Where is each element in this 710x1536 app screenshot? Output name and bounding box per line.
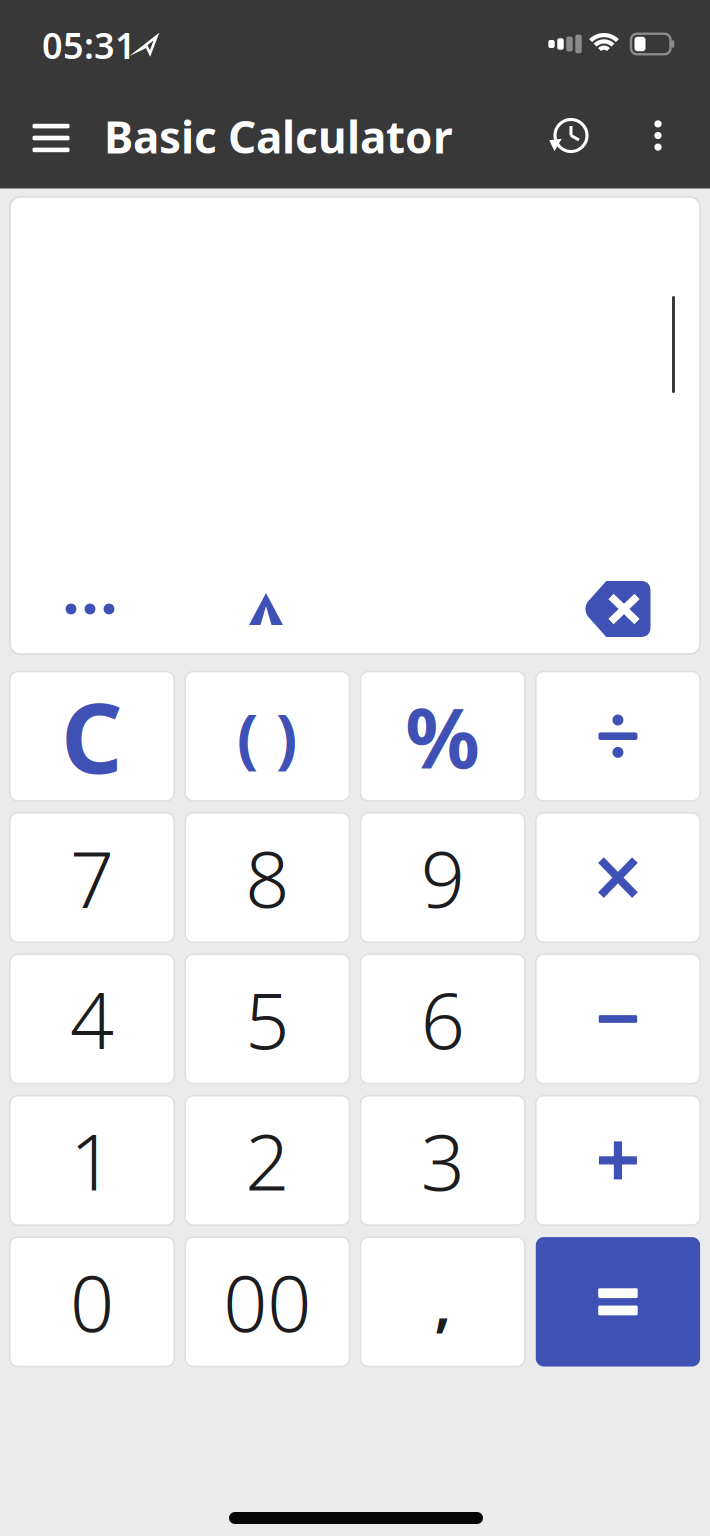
staticText: 9 xyxy=(421,826,465,929)
button[interactable]: 00 xyxy=(185,1237,349,1366)
button[interactable]: ( ) xyxy=(185,671,349,801)
button[interactable]: 7 xyxy=(10,813,174,942)
button[interactable]: 6 xyxy=(360,954,525,1084)
staticText: 0 xyxy=(70,1250,114,1353)
button[interactable] xyxy=(21,108,81,168)
button[interactable]: 9 xyxy=(360,813,525,942)
button[interactable]: 4 xyxy=(10,954,174,1084)
staticText: 5 xyxy=(245,968,289,1070)
staticText: , xyxy=(434,1261,451,1342)
button[interactable] xyxy=(536,1096,700,1225)
button[interactable]: 2 xyxy=(185,1096,349,1225)
button[interactable] xyxy=(633,105,683,165)
staticText: 2 xyxy=(245,1109,289,1212)
staticText: 7 xyxy=(70,826,114,929)
button[interactable] xyxy=(536,813,700,942)
button[interactable] xyxy=(577,579,657,639)
button[interactable] xyxy=(536,954,700,1084)
button[interactable] xyxy=(231,581,301,637)
staticText: ( ) xyxy=(237,694,298,779)
staticText: 05:31 xyxy=(42,21,136,69)
button[interactable] xyxy=(541,105,601,165)
staticText: 6 xyxy=(421,968,465,1070)
button[interactable] xyxy=(50,581,130,637)
button[interactable]: 8 xyxy=(185,813,349,942)
button[interactable]: 1 xyxy=(10,1096,174,1225)
button[interactable] xyxy=(536,671,700,801)
staticText: 00 xyxy=(223,1250,311,1353)
button[interactable]: 0 xyxy=(10,1237,174,1366)
button[interactable]: C xyxy=(10,671,174,801)
staticText: 8 xyxy=(245,826,289,929)
button[interactable]: 3 xyxy=(360,1096,525,1225)
staticText: 3 xyxy=(421,1109,465,1212)
button[interactable]: % xyxy=(360,671,525,801)
staticText: 1 xyxy=(70,1109,114,1212)
staticText: % xyxy=(405,681,480,791)
staticText: 4 xyxy=(70,968,114,1070)
staticText: C xyxy=(61,672,123,800)
button[interactable]: 5 xyxy=(185,954,349,1084)
staticText: Basic Calculator xyxy=(104,107,453,166)
button[interactable] xyxy=(536,1237,700,1366)
button[interactable]: , xyxy=(360,1237,525,1366)
